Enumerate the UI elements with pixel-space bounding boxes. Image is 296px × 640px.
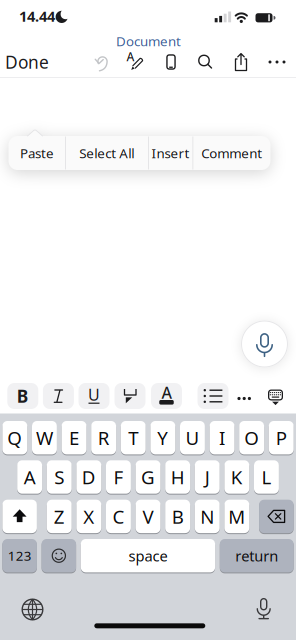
- staticText: I: [219, 425, 225, 450]
- button[interactable]: C: [106, 499, 131, 534]
- button[interactable]: Q: [2, 420, 27, 455]
- staticText: D: [82, 465, 96, 489]
- button[interactable]: Y: [150, 420, 175, 455]
- staticText: A: [161, 382, 171, 403]
- staticText: N: [200, 504, 214, 529]
- button[interactable]: Format: [197, 383, 228, 409]
- button[interactable]: Next keyboard: [17, 594, 47, 624]
- button[interactable]: Format: [78, 383, 109, 409]
- staticText: K: [231, 465, 243, 489]
- button[interactable]: O: [239, 420, 264, 455]
- staticText: H: [171, 465, 185, 489]
- button[interactable]: return: [220, 538, 294, 573]
- staticText: S: [54, 465, 64, 489]
- button[interactable]: P: [269, 420, 294, 455]
- button[interactable]: I: [210, 420, 234, 455]
- staticText: F: [113, 465, 123, 489]
- button[interactable]: X: [76, 499, 101, 534]
- staticText: A: [24, 465, 36, 489]
- staticText: X: [83, 504, 94, 529]
- button[interactable]: Format: [114, 383, 145, 409]
- staticText: C: [112, 504, 124, 529]
- button[interactable]: Comment: [193, 136, 270, 170]
- button[interactable]: T: [121, 420, 146, 455]
- button[interactable]: Select All: [66, 136, 148, 170]
- button[interactable]: Search: [191, 48, 219, 76]
- staticText: G: [141, 465, 155, 489]
- button[interactable]: L: [254, 460, 279, 494]
- button[interactable]: Insert: [149, 136, 192, 170]
- button[interactable]: G: [136, 460, 160, 494]
- staticText: O: [244, 425, 259, 450]
- button[interactable]: Mobile view: [157, 48, 185, 76]
- button[interactable]: D: [76, 460, 101, 494]
- button[interactable]: More: [263, 48, 291, 76]
- button[interactable]: N: [195, 499, 220, 534]
- button[interactable]: J: [195, 460, 220, 494]
- staticText: B: [17, 384, 29, 407]
- button[interactable]: Delete: [259, 499, 294, 534]
- button[interactable]: U: [180, 420, 205, 455]
- button[interactable]: H: [165, 460, 190, 494]
- button[interactable]: M: [224, 499, 249, 534]
- button[interactable]: Dictation: [249, 594, 279, 624]
- button[interactable]: A: [17, 460, 42, 494]
- staticText: Z: [54, 504, 65, 529]
- button[interactable]: E: [62, 420, 86, 455]
- button[interactable]: Format: [43, 383, 74, 409]
- staticText: J: [205, 465, 210, 489]
- button[interactable]: Emoji: [42, 538, 76, 573]
- button[interactable]: Dictate: [240, 320, 288, 368]
- button[interactable]: Paste: [9, 136, 65, 170]
- staticText: 123: [8, 547, 32, 564]
- staticText: U: [185, 425, 199, 450]
- staticText: Paste: [20, 144, 54, 162]
- staticText: L: [261, 465, 271, 489]
- button[interactable]: R: [91, 420, 116, 455]
- staticText: T: [128, 425, 138, 450]
- staticText: U: [88, 384, 100, 405]
- button[interactable]: Hide keyboard: [262, 383, 288, 409]
- staticText: B: [172, 504, 184, 529]
- staticText: A: [126, 48, 134, 64]
- button[interactable]: S: [47, 460, 72, 494]
- button[interactable]: Ink annotation: [122, 48, 150, 76]
- staticText: space: [128, 546, 167, 565]
- button[interactable]: Z: [47, 499, 72, 534]
- button[interactable]: Shift: [2, 499, 37, 534]
- button[interactable]: F: [106, 460, 131, 494]
- button[interactable]: B: [165, 499, 190, 534]
- button[interactable]: space: [81, 538, 215, 573]
- button[interactable]: W: [32, 420, 57, 455]
- button[interactable]: More formatting: [232, 384, 256, 412]
- staticText: Document: [116, 32, 181, 50]
- staticText: E: [69, 425, 79, 450]
- button[interactable]: V: [136, 499, 160, 534]
- staticText: 14.44: [19, 6, 55, 26]
- button[interactable]: 123: [2, 538, 37, 573]
- staticText: P: [276, 425, 287, 450]
- staticText: return: [235, 546, 278, 565]
- staticText: V: [143, 504, 154, 529]
- staticText: R: [98, 425, 110, 450]
- staticText: W: [36, 425, 53, 450]
- button[interactable]: Done: [5, 49, 49, 75]
- button[interactable]: Format: [7, 383, 38, 409]
- staticText: Select All: [79, 144, 134, 162]
- button[interactable]: K: [224, 460, 249, 494]
- button[interactable]: Undo: [87, 48, 115, 76]
- staticText: Y: [157, 425, 168, 450]
- staticText: Insert: [151, 144, 189, 162]
- staticText: Comment: [201, 144, 262, 162]
- button[interactable]: Format: [151, 383, 182, 409]
- staticText: M: [228, 504, 245, 529]
- staticText: Q: [7, 425, 22, 450]
- staticText: Done: [5, 50, 49, 73]
- button[interactable]: Share: [227, 48, 255, 76]
